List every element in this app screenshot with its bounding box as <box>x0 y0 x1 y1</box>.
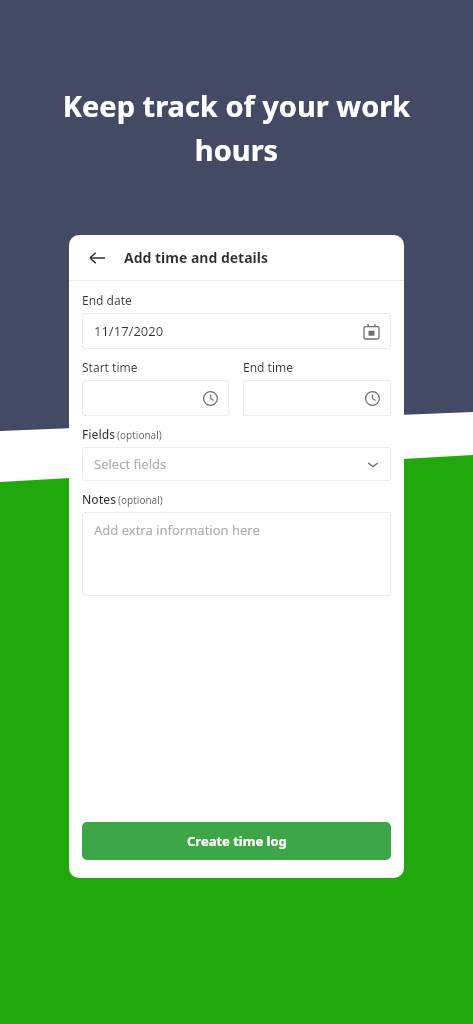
staticText: (optional) <box>117 428 162 442</box>
other: Expand <box>367 458 379 470</box>
button[interactable]: 11/17/2020 <box>82 313 391 349</box>
staticText: Fields <box>82 426 115 442</box>
button[interactable]: Back <box>69 235 404 280</box>
button[interactable]: Select fields <box>82 447 391 481</box>
staticText: Select fields <box>94 455 167 473</box>
staticText: End date <box>82 292 132 308</box>
staticText: 11/17/2020 <box>94 322 164 340</box>
staticText: Notes <box>82 491 116 507</box>
button[interactable]: Pick time <box>243 380 391 416</box>
staticText: Keep track of your work hours <box>40 86 433 169</box>
staticText: Start time <box>82 359 138 375</box>
other: Pick time <box>203 391 218 406</box>
other: Pick time <box>365 391 380 406</box>
other: Back <box>86 247 108 269</box>
staticText: (optional) <box>118 493 163 507</box>
button[interactable]: Create time log <box>82 822 391 860</box>
button[interactable]: Add extra information here <box>82 512 391 596</box>
staticText: Add extra information here <box>94 521 260 539</box>
staticText: End time <box>243 359 294 375</box>
button[interactable]: Pick time <box>82 380 229 416</box>
other: Pick date <box>364 324 379 339</box>
staticText: Add time and details <box>124 248 268 267</box>
staticText: Create time log <box>187 832 287 850</box>
